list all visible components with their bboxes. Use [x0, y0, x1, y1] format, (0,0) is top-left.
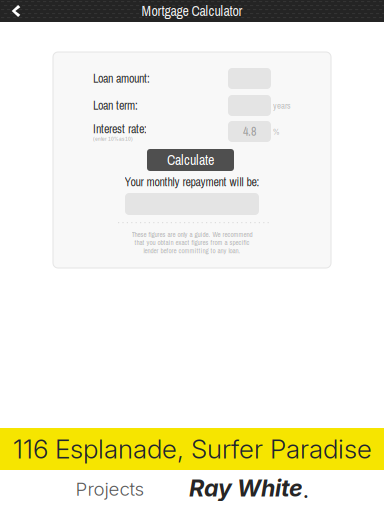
staticText: Loan term:: [93, 97, 138, 114]
staticText: These figures are only a guide. We recom…: [131, 230, 252, 239]
staticText: .: [303, 481, 309, 502]
staticText: %: [273, 126, 279, 137]
staticText: years: [273, 100, 291, 111]
staticText: (enter 10% as 10): [93, 134, 133, 143]
button[interactable]: Calculate: [147, 149, 234, 171]
staticText: 116 Esplanade, Surfer Paradise: [13, 433, 372, 465]
staticText: Loan amount:: [93, 70, 150, 87]
staticText: Your monthly repayment will be:: [124, 174, 259, 190]
staticText: Calculate: [167, 151, 214, 169]
button[interactable]: Interest rate: [228, 121, 271, 142]
staticText: Mortgage Calculator: [141, 2, 242, 20]
button[interactable]: Projects: [79, 478, 149, 500]
staticText: 4.8: [243, 123, 256, 140]
staticText: Projects: [75, 478, 144, 500]
staticText: Ray White: [189, 474, 303, 502]
staticText: lender before committing to any loan.: [143, 246, 240, 255]
staticText: Interest rate:: [93, 121, 147, 137]
staticText: that you obtain exact figures from a spe…: [134, 238, 249, 247]
button[interactable]: Back: [0, 0, 32, 22]
